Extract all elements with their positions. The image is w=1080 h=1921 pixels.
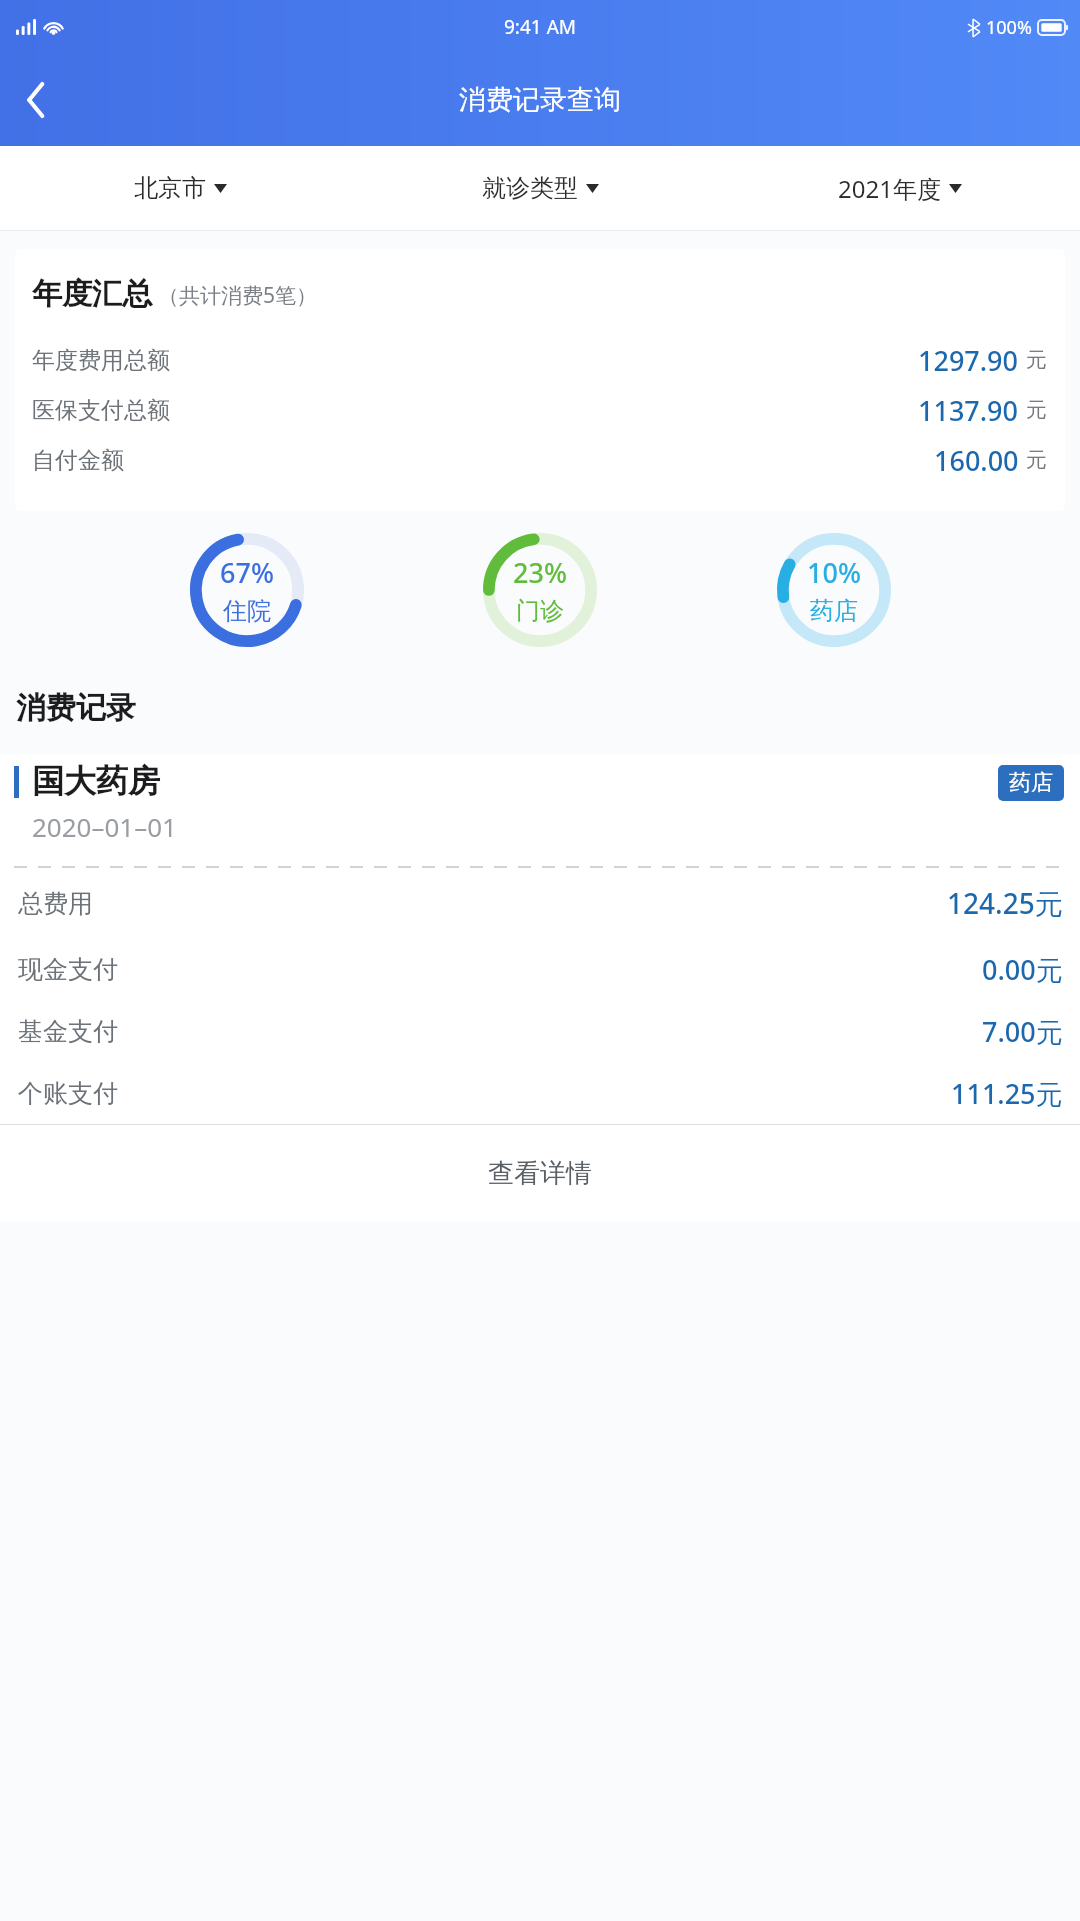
staticText: 消费记录查询 [459,83,621,117]
staticText: 元 [1026,347,1047,373]
staticText: 住院 [223,596,271,626]
staticText: 2021年度 [838,172,941,205]
button[interactable]: 北京市 [0,146,360,230]
staticText: 111.25元 [951,1075,1063,1112]
button[interactable]: 23% [483,533,597,647]
staticText: 年度汇总 [32,275,152,313]
button[interactable]: 查看详情 [0,1125,1080,1221]
staticText: 药店 [1009,769,1053,797]
staticText: 9:41 AM [504,14,577,40]
staticText: 元 [1026,397,1047,423]
staticText: 2020–01–01 [32,809,177,844]
button[interactable]: 国大药房 [0,755,1080,1124]
staticText: 国大药房 [32,761,160,801]
staticText: 1297.90 [918,342,1019,379]
staticText: 消费记录 [16,689,136,727]
staticText: 现金支付 [18,954,118,985]
staticText: 23% [513,554,567,591]
staticText: 元 [1026,447,1047,473]
staticText: 7.00元 [982,1013,1063,1050]
staticText: 160.00 [934,442,1019,479]
staticText: 0.00元 [982,951,1063,988]
staticText: 就诊类型 [482,173,578,203]
button[interactable]: 2021年度 [720,146,1080,230]
staticText: 医保支付总额 [32,396,170,425]
staticText: 10% [807,554,861,591]
staticText: 门诊 [516,596,564,626]
button[interactable]: 药店 [998,765,1064,801]
button[interactable]: 就诊类型 [360,146,720,230]
button[interactable]: Back [0,64,72,136]
staticText: 100% [986,15,1032,40]
button[interactable]: 年度汇总 [15,249,1065,511]
staticText: 基金支付 [18,1016,118,1047]
staticText: 查看详情 [488,1157,592,1190]
staticText: 124.25元 [947,884,1063,922]
staticText: 67% [220,554,274,591]
staticText: 药店 [810,596,858,626]
staticText: 北京市 [134,173,206,203]
staticText: （共计消费5笔） [158,281,318,310]
staticText: 个账支付 [18,1078,118,1109]
staticText: 自付金额 [32,446,124,475]
staticText: 年度费用总额 [32,346,170,375]
staticText: 总费用 [18,888,93,919]
button[interactable]: 10% [777,533,891,647]
button[interactable]: 67% [190,533,304,647]
staticText: 1137.90 [918,392,1019,429]
